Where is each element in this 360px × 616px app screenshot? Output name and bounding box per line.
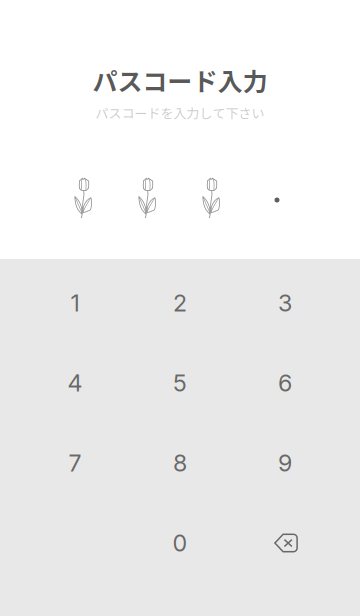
button[interactable]: 4 [22,343,127,423]
button[interactable]: 8 [127,423,232,503]
staticText: 2 [173,289,187,317]
button[interactable]: 3 [232,263,337,343]
staticText: 1 [70,289,79,317]
button[interactable]: 5 [127,343,232,423]
staticText: パスコード入力 [92,62,267,98]
button[interactable]: 7 [22,423,127,503]
button[interactable]: 6 [232,343,337,423]
staticText: パスコードを入力して下さい [95,103,264,122]
button[interactable]: Delete [232,503,337,583]
button[interactable]: 0 [127,503,232,583]
staticText: 9 [278,449,292,477]
button[interactable]: 9 [232,423,337,503]
staticText: 8 [173,449,187,477]
staticText: 3 [278,289,292,317]
button[interactable]: 1 [22,263,127,343]
staticText: 0 [172,529,187,557]
staticText: 5 [173,369,187,397]
staticText: 4 [67,369,82,397]
button[interactable]: 2 [127,263,232,343]
staticText: 7 [68,449,81,477]
staticText: 6 [278,369,292,397]
